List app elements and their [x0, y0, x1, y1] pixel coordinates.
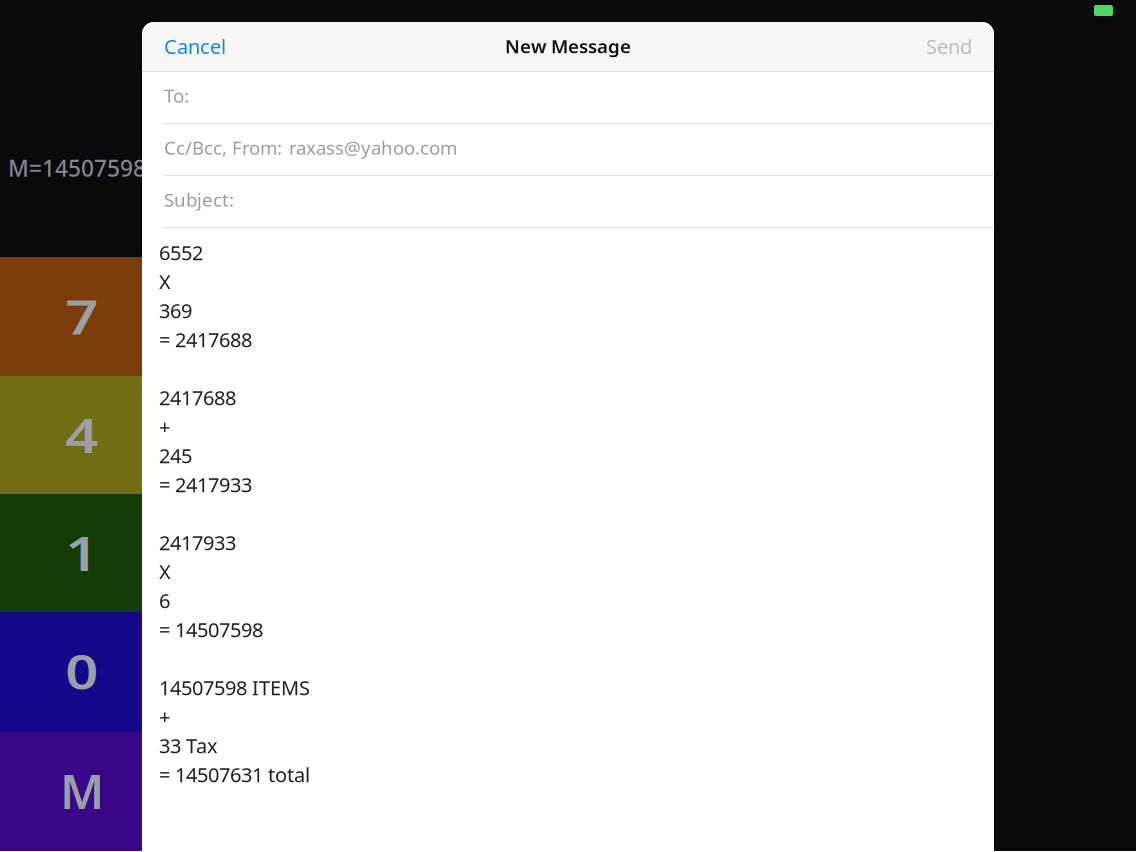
staticText: +	[159, 413, 170, 440]
staticText: = 2417933	[159, 471, 252, 498]
staticText: 33 Tax	[159, 732, 218, 759]
staticText: 1	[68, 522, 95, 584]
staticText: 0	[68, 640, 95, 702]
staticText: Cc/Bcc, From:	[164, 135, 282, 160]
staticText: 14507598 ITEMS	[159, 674, 310, 701]
staticText: Send	[926, 33, 972, 60]
staticText: +	[159, 703, 170, 730]
button[interactable]: M	[0, 731, 142, 851]
staticText: 6	[159, 587, 170, 614]
staticText: X	[159, 268, 171, 295]
staticText: New Message	[505, 34, 631, 58]
button[interactable]: Cc/Bcc, From:	[142, 124, 994, 176]
staticText: Cancel	[164, 33, 226, 60]
staticText: M	[60, 760, 103, 822]
staticText: To:	[164, 83, 189, 108]
button[interactable]: Send	[910, 22, 994, 71]
staticText: 6552	[159, 239, 203, 266]
button[interactable]: To:	[142, 72, 994, 124]
staticText: = 14507598	[159, 616, 263, 643]
staticText: Subject:	[164, 187, 234, 212]
staticText: 369	[159, 297, 192, 324]
staticText: = 14507631 total	[159, 761, 310, 788]
button[interactable]: Battery	[1094, 5, 1113, 16]
staticText: = 2417688	[159, 326, 252, 353]
staticText: 4	[68, 404, 95, 466]
staticText: raxass@yahoo.com	[289, 135, 457, 160]
staticText: 7	[68, 285, 95, 347]
button[interactable]: 1	[0, 494, 142, 612]
button[interactable]: Cancel	[142, 22, 242, 71]
button[interactable]: Subject:	[142, 176, 994, 228]
staticText: 2417688	[159, 384, 236, 411]
button[interactable]: 7	[0, 257, 142, 376]
staticText: 2417933	[159, 529, 236, 556]
staticText: 245	[159, 442, 192, 469]
staticText: M=14507598	[8, 153, 146, 183]
button[interactable]: 4	[0, 376, 142, 494]
staticText: X	[159, 558, 171, 585]
button[interactable]: 0	[0, 612, 142, 731]
